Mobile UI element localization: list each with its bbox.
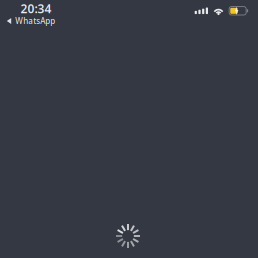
staticText: 20:34 bbox=[20, 0, 51, 16]
button[interactable]: WhatsApp bbox=[0, 14, 62, 28]
staticText: WhatsApp bbox=[15, 16, 55, 26]
